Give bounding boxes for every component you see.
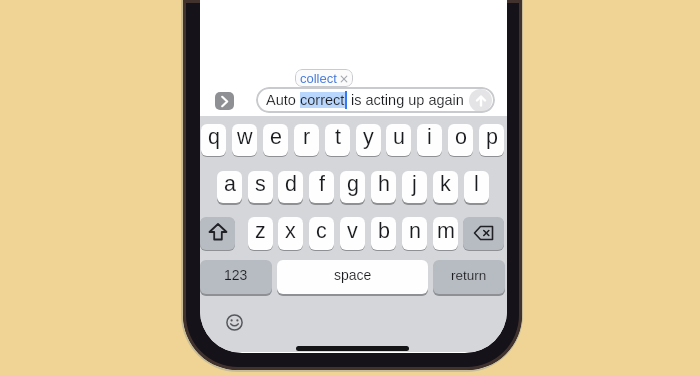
button[interactable]: e [263, 124, 288, 156]
staticText: return [451, 268, 487, 283]
button[interactable]: m [433, 217, 458, 250]
staticText: s [255, 172, 266, 196]
button[interactable]: u [386, 124, 411, 156]
staticText: m [437, 219, 455, 243]
button[interactable]: d [278, 171, 303, 203]
button[interactable]: l [464, 171, 489, 203]
staticText: e [270, 125, 282, 149]
staticText: d [285, 172, 297, 196]
staticText: f [319, 172, 325, 196]
button[interactable]: y [356, 124, 381, 156]
button[interactable] [200, 217, 235, 250]
button[interactable]: g [340, 171, 365, 203]
staticText: y [363, 125, 374, 149]
staticText: space [334, 267, 372, 283]
button[interactable] [463, 217, 504, 250]
staticText: c [316, 219, 327, 243]
staticText: collect [300, 71, 337, 86]
button[interactable]: 123 [200, 260, 272, 294]
staticText: x [285, 219, 296, 243]
staticText: t [335, 125, 341, 149]
staticText: p [486, 125, 498, 149]
staticText: is acting up again [347, 92, 464, 108]
staticText: g [347, 172, 359, 196]
staticText: v [347, 219, 358, 243]
staticText: b [378, 219, 390, 243]
staticText: w [237, 125, 253, 149]
staticText: h [378, 172, 390, 196]
staticText: u [393, 125, 405, 149]
button[interactable]: h [371, 171, 396, 203]
button[interactable]: r [294, 124, 319, 156]
staticText: z [255, 219, 266, 243]
button[interactable]: q [201, 124, 226, 156]
button[interactable]: z [248, 217, 273, 250]
button[interactable]: n [402, 217, 427, 250]
staticText: 123 [224, 267, 248, 283]
button[interactable]: i [417, 124, 442, 156]
button[interactable]: k [433, 171, 458, 203]
button[interactable]: b [371, 217, 396, 250]
staticText: correct [300, 92, 345, 108]
button[interactable]: return [433, 260, 505, 294]
button[interactable]: t [325, 124, 350, 156]
staticText: l [474, 172, 479, 196]
staticText: q [208, 125, 220, 149]
button[interactable]: c [309, 217, 334, 250]
button[interactable]: v [340, 217, 365, 250]
button[interactable]: collect [295, 69, 353, 87]
button[interactable]: a [217, 171, 242, 203]
staticText: o [455, 125, 467, 149]
staticText: r [303, 125, 311, 149]
staticText: j [412, 172, 417, 196]
button[interactable]: f [309, 171, 334, 203]
staticText: i [427, 125, 432, 149]
button[interactable] [215, 92, 234, 110]
staticText: Auto [266, 92, 300, 108]
button[interactable]: w [232, 124, 257, 156]
button[interactable]: Auto [256, 87, 495, 113]
staticText: a [224, 172, 236, 196]
staticText: n [409, 219, 421, 243]
button[interactable]: j [402, 171, 427, 203]
button[interactable]: p [479, 124, 504, 156]
staticText: k [440, 172, 451, 196]
button[interactable]: s [248, 171, 273, 203]
button[interactable]: o [448, 124, 473, 156]
button[interactable] [469, 89, 492, 112]
button[interactable]: space [277, 260, 428, 294]
button[interactable]: x [278, 217, 303, 250]
